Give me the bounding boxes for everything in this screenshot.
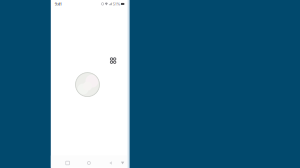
button[interactable]: Hide keyboard: [117, 157, 128, 168]
button[interactable]: Home: [83, 157, 94, 168]
button[interactable]: Back: [105, 157, 116, 168]
staticText: 51%: [113, 1, 120, 7]
button[interactable]: Profile: [75, 73, 99, 97]
button[interactable]: Apps: [108, 56, 118, 66]
staticText: 9:41: [55, 1, 62, 7]
button[interactable]: Recents: [62, 157, 73, 168]
